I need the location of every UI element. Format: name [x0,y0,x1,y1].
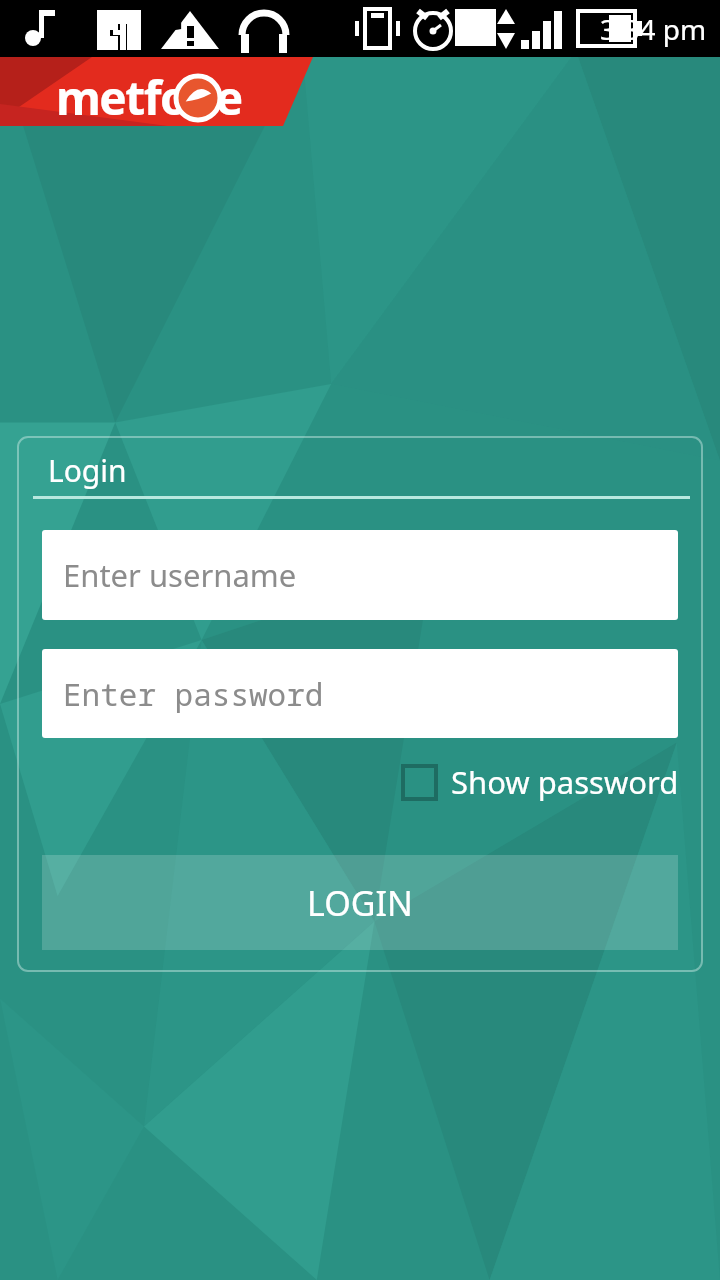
other: Show password [403,766,436,799]
button[interactable]: Show password [403,758,679,806]
staticText: LOGIN [307,880,413,926]
staticText: metfone [56,66,242,129]
staticText: Enter password [63,673,324,715]
button[interactable]: Enter password [42,649,678,738]
button[interactable]: LOGIN [42,855,678,950]
staticText: Enter username [63,554,297,596]
staticText: Show password [451,761,679,803]
staticText: 3:34 pm [600,10,707,48]
staticText: Login [48,450,127,491]
button[interactable]: Enter username [42,530,678,620]
staticText: 4G [152,4,184,37]
